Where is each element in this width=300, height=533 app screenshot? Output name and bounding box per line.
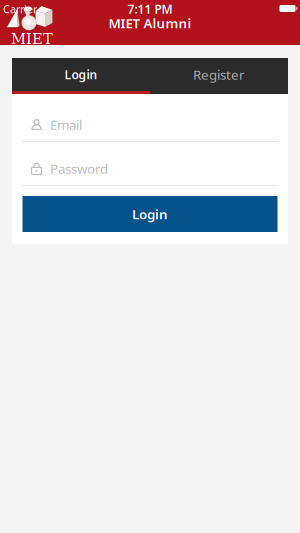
staticText: Login bbox=[132, 205, 168, 223]
button[interactable]: Login bbox=[22, 196, 277, 232]
staticText: Login bbox=[64, 66, 97, 82]
staticText: 7:11 PM bbox=[127, 1, 172, 17]
staticText: Carrier bbox=[3, 2, 37, 16]
staticText: MIET Alumni bbox=[108, 14, 191, 32]
staticText: MIET bbox=[11, 30, 53, 48]
staticText: Password bbox=[50, 160, 108, 177]
staticText: Register bbox=[193, 66, 245, 83]
button[interactable]: Register bbox=[150, 58, 288, 94]
staticText: Email bbox=[50, 116, 82, 133]
button[interactable]: Login bbox=[12, 58, 150, 94]
